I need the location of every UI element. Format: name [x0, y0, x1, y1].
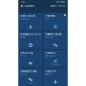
- staticText: Collect points: [45, 55, 55, 57]
- staticText: Recharge & Bills: [20, 33, 40, 36]
- staticText: Rewards: [45, 51, 55, 54]
- button[interactable]: Transfer Money: [43, 31, 67, 49]
- staticText: Search: [50, 4, 56, 7]
- staticText: Bank Account: [20, 14, 35, 17]
- button[interactable]: Profile: [58, 4, 65, 7]
- button[interactable]: Support: [43, 68, 67, 86]
- staticText: To anyone: [45, 36, 53, 38]
- button[interactable]: Search: [50, 4, 56, 7]
- staticText: LTE: [56, 1, 59, 3]
- staticText: View balance: [20, 18, 29, 20]
- staticText: Profile: [58, 4, 65, 7]
- staticText: Offers: [20, 55, 26, 57]
- staticText: Dashboard: [24, 4, 34, 7]
- button[interactable]: Shopping: [18, 50, 43, 67]
- staticText: Earn cash: [51, 64, 59, 66]
- button[interactable]: Recharge & Bills: [18, 31, 43, 49]
- staticText: 100%: [60, 1, 65, 3]
- staticText: Mobile: [20, 36, 25, 38]
- staticText: Insurance plans: [20, 70, 36, 73]
- staticText: Payments: [45, 14, 55, 17]
- button[interactable]: Home: [21, 4, 34, 7]
- button[interactable]: Rewards: [43, 50, 67, 67]
- staticText: View: [29, 82, 32, 84]
- staticText: Protect: [20, 73, 27, 75]
- staticText: Transfer Money: [45, 33, 61, 36]
- button[interactable]: Insurance plans: [18, 68, 43, 86]
- staticText: Support: [45, 70, 56, 73]
- staticText: Help desk: [45, 73, 52, 75]
- staticText: Shopping: [20, 51, 33, 54]
- staticText: 9:41: [21, 1, 25, 3]
- button[interactable]: Bank Account: [18, 13, 43, 31]
- button[interactable]: Payments: [43, 13, 67, 31]
- staticText: Send: [45, 18, 49, 20]
